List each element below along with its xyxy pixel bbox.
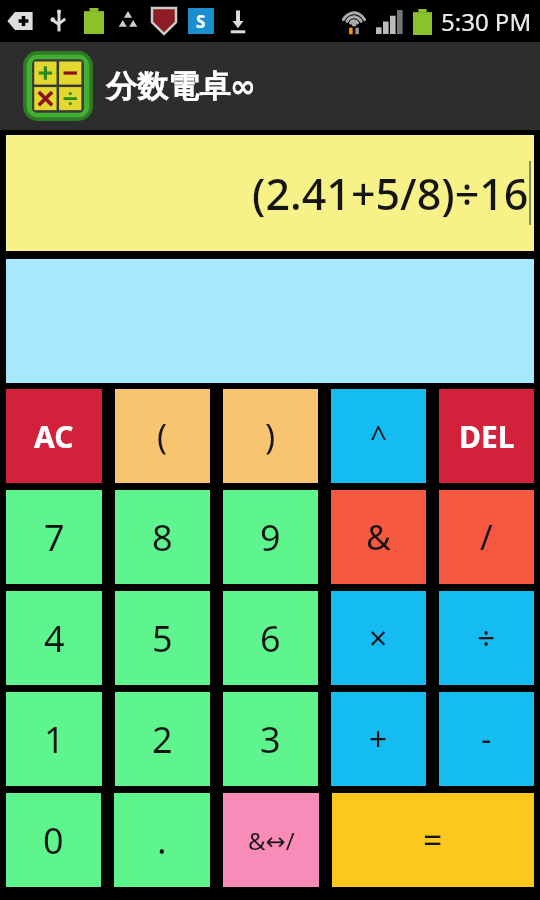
- staticText: S: [196, 10, 206, 33]
- staticText: ^: [370, 416, 388, 457]
- staticText: 6: [260, 614, 281, 663]
- staticText: 7: [44, 513, 65, 562]
- button[interactable]: ×: [331, 591, 426, 685]
- staticText: ): [265, 413, 276, 459]
- button[interactable]: 7: [6, 490, 102, 584]
- staticText: ×: [369, 616, 388, 660]
- button[interactable]: ÷: [439, 591, 534, 685]
- staticText: &↔/: [248, 824, 295, 857]
- button[interactable]: &↔/: [223, 793, 319, 887]
- staticText: 2: [152, 715, 173, 764]
- staticText: .: [157, 816, 167, 865]
- staticText: +: [369, 717, 388, 761]
- button[interactable]: 4: [6, 591, 102, 685]
- button[interactable]: App icon: [0, 42, 540, 130]
- staticText: 5: [152, 614, 173, 663]
- button[interactable]: 8: [115, 490, 210, 584]
- button[interactable]: DEL: [439, 389, 534, 483]
- button[interactable]: 1: [6, 692, 102, 786]
- button[interactable]: 6: [223, 591, 318, 685]
- staticText: 1: [44, 715, 65, 764]
- staticText: DEL: [459, 416, 515, 457]
- button[interactable]: ^: [331, 389, 426, 483]
- staticText: (: [157, 413, 168, 459]
- staticText: 分数電卓∞: [106, 67, 256, 106]
- button[interactable]: -: [439, 692, 534, 786]
- staticText: 4: [44, 614, 65, 663]
- button[interactable]: &: [331, 490, 426, 584]
- staticText: ÷: [477, 616, 496, 660]
- button[interactable]: .: [114, 793, 210, 887]
- button[interactable]: AC: [6, 389, 102, 483]
- button[interactable]: 3: [223, 692, 318, 786]
- staticText: 8: [152, 513, 173, 562]
- button[interactable]: ): [223, 389, 318, 483]
- button[interactable]: 2: [115, 692, 210, 786]
- button[interactable]: (: [115, 389, 210, 483]
- staticText: 9: [260, 513, 281, 562]
- staticText: &: [366, 514, 391, 560]
- button[interactable]: 9: [223, 490, 318, 584]
- button[interactable]: 5: [115, 591, 210, 685]
- button[interactable]: /: [439, 490, 534, 584]
- button[interactable]: 0: [6, 793, 101, 887]
- staticText: =: [423, 817, 443, 863]
- staticText: 0: [43, 816, 64, 865]
- staticText: -: [481, 717, 492, 761]
- staticText: (2.41+5/8)÷16: [252, 164, 529, 223]
- staticText: /: [480, 514, 493, 560]
- button[interactable]: +: [331, 692, 426, 786]
- staticText: 5:30 PM: [441, 5, 532, 38]
- button[interactable]: =: [332, 793, 534, 887]
- staticText: AC: [34, 416, 74, 457]
- other: App icon: [22, 50, 94, 122]
- button[interactable]: (2.41+5/8)÷16: [6, 135, 534, 251]
- staticText: 3: [260, 715, 281, 764]
